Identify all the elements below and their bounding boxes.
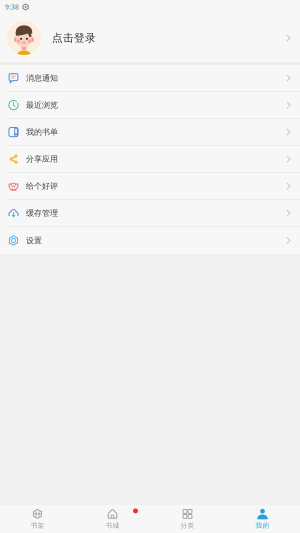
- staticText: 最近浏览: [26, 100, 58, 110]
- staticText: 给个好评: [26, 181, 58, 191]
- staticText: 分享应用: [26, 154, 58, 164]
- button[interactable]: 书城: [75, 505, 150, 533]
- button[interactable]: 我的: [225, 505, 300, 533]
- staticText: 设置: [26, 236, 42, 245]
- button[interactable]: 书架: [0, 505, 75, 533]
- staticText: 我的书单: [26, 127, 58, 137]
- staticText: 书架: [30, 521, 44, 530]
- staticText: 缓存管理: [26, 208, 58, 218]
- staticText: 书城: [105, 521, 119, 530]
- staticText: 我的: [255, 521, 269, 530]
- button[interactable]: 消息通知: [0, 65, 300, 92]
- button[interactable]: 缓存管理: [0, 200, 300, 227]
- staticText: 消息通知: [26, 73, 58, 83]
- button[interactable]: 设置: [0, 227, 300, 254]
- button[interactable]: 最近浏览: [0, 92, 300, 119]
- button[interactable]: 我的书单: [0, 119, 300, 146]
- staticText: 点击登录: [52, 31, 96, 44]
- button[interactable]: 给个好评: [0, 173, 300, 200]
- staticText: 9:38: [5, 3, 19, 11]
- button[interactable]: 分类: [150, 505, 225, 533]
- button[interactable]: 分享应用: [0, 146, 300, 173]
- button[interactable]: 点击登录: [0, 14, 300, 62]
- staticText: 分类: [180, 521, 194, 530]
